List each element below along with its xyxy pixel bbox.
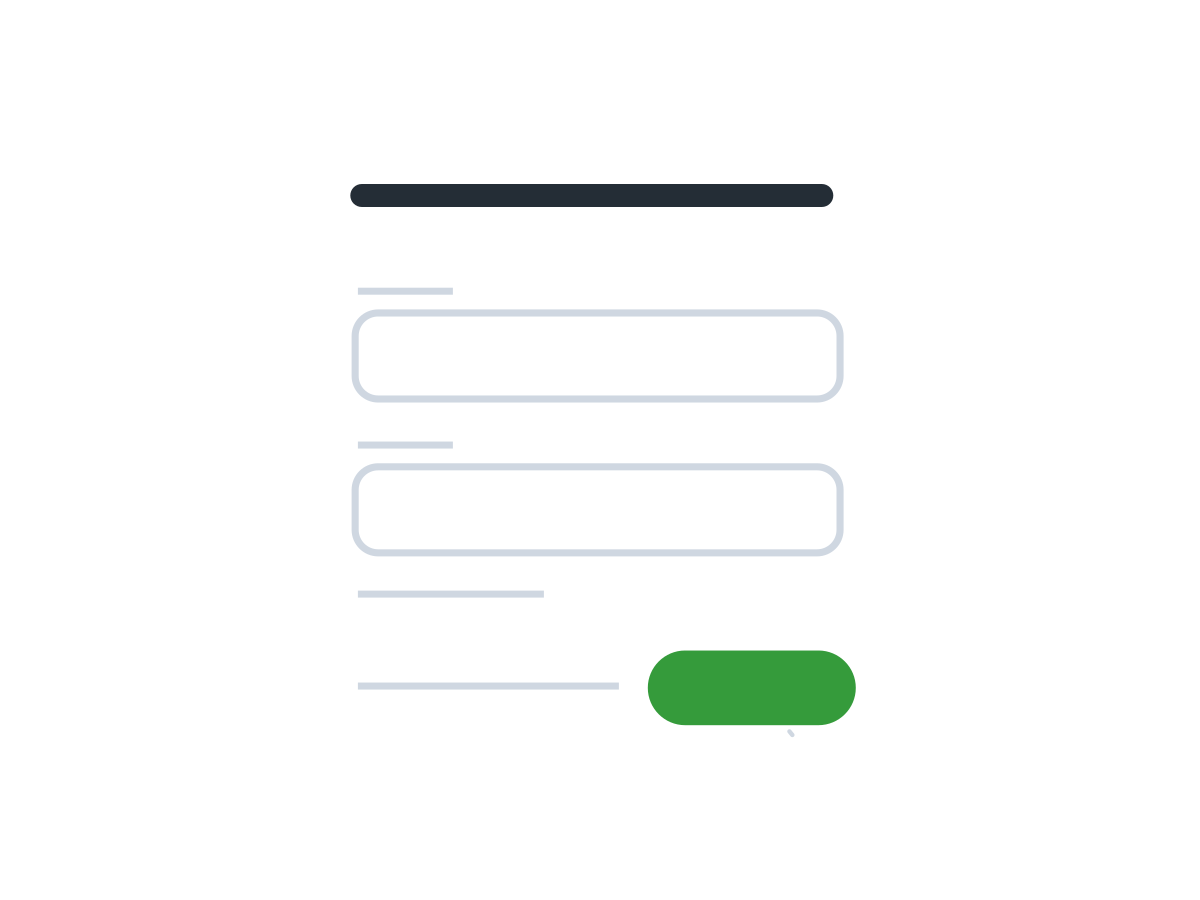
button[interactable]: Text field — [352, 309, 844, 403]
button[interactable]: Submit — [648, 650, 856, 725]
button[interactable]: Forgot password — [358, 676, 619, 697]
button[interactable]: Text field — [352, 463, 844, 556]
